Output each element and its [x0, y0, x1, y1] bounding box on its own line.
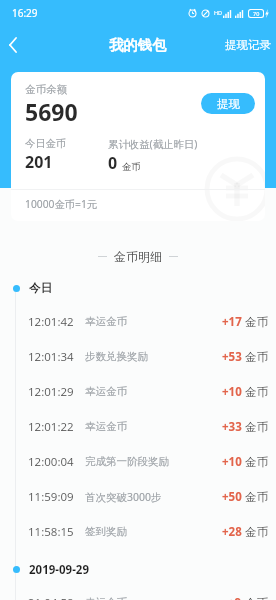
staticText: 11:59:09	[28, 489, 74, 505]
staticText: 2019-09-29	[29, 562, 89, 576]
button[interactable]: 12:01:42	[0, 304, 276, 339]
button[interactable]: Back	[0, 32, 28, 58]
staticText: 12:01:34	[28, 349, 74, 365]
staticText: +53	[222, 349, 242, 365]
staticText: 201	[25, 151, 53, 173]
button[interactable]: 21:04:58	[0, 585, 276, 600]
staticText: 步数兑换奖励	[85, 350, 148, 363]
button[interactable]: 11:59:09	[0, 479, 276, 514]
button[interactable]: 12:01:22	[0, 409, 276, 444]
staticText: 0	[108, 152, 118, 174]
staticText: +33	[222, 419, 242, 435]
staticText: +10	[222, 454, 242, 470]
button[interactable]: 提现	[201, 93, 255, 114]
staticText: 12:01:42	[28, 314, 74, 330]
staticText: +50	[222, 489, 242, 505]
staticText: 金币	[245, 350, 268, 364]
button[interactable]: 12:00:04	[0, 444, 276, 479]
staticText: 21:04:58	[28, 595, 74, 600]
staticText: +17	[222, 314, 242, 330]
staticText: 16:29	[12, 6, 38, 20]
staticText: 完成第一阶段奖励	[85, 455, 169, 468]
staticText: 12:01:29	[28, 384, 74, 400]
staticText: 金币明细	[114, 249, 162, 264]
button[interactable]: 12:01:34	[0, 339, 276, 374]
staticText: 今日	[29, 281, 52, 295]
staticText: 金币	[245, 420, 268, 434]
staticText: +28	[222, 524, 242, 540]
staticText: 幸运金币	[85, 420, 127, 433]
staticText: 5690	[25, 96, 78, 127]
staticText: 提现记录	[225, 38, 271, 52]
staticText: 金币	[245, 525, 268, 539]
staticText: 金币余额	[25, 83, 67, 96]
staticText: 金币	[245, 385, 268, 399]
staticText: HD	[214, 9, 223, 16]
staticText: 金币	[245, 315, 268, 329]
staticText: 12:01:22	[28, 419, 74, 435]
staticText: 提现	[217, 97, 240, 111]
staticText: 70	[253, 10, 260, 17]
staticText: +10	[222, 384, 242, 400]
staticText: 金币	[245, 490, 268, 504]
staticText: 今日金币	[25, 137, 67, 150]
staticText: 幸运金币	[85, 596, 127, 600]
staticText: 12:00:04	[28, 454, 74, 470]
staticText: 我的钱包	[109, 36, 167, 54]
staticText: +9	[228, 595, 242, 600]
staticText: 幸运金币	[85, 385, 127, 398]
staticText: 10000金币=1元	[25, 197, 98, 211]
staticText: 累计收益(截止昨日)	[108, 137, 198, 151]
button[interactable]: 11:58:15	[0, 514, 276, 549]
staticText: 11:58:15	[28, 524, 74, 540]
button[interactable]: 提现记录	[220, 32, 276, 58]
staticText: 签到奖励	[85, 525, 127, 538]
staticText: 幸运金币	[85, 315, 127, 328]
staticText: 首次突破3000步	[85, 490, 162, 504]
button[interactable]: 12:01:29	[0, 374, 276, 409]
staticText: 金币	[122, 161, 141, 173]
staticText: 金币	[245, 455, 268, 469]
staticText: 金币	[245, 596, 268, 600]
